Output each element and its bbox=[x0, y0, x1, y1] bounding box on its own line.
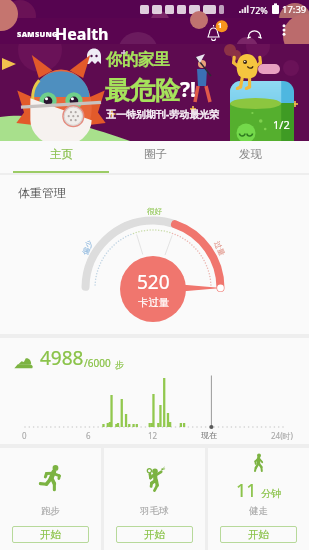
button[interactable]: More options bbox=[276, 22, 292, 38]
staticText: 1 bbox=[218, 21, 223, 31]
staticText: 开始 bbox=[144, 528, 165, 541]
staticText: 开始 bbox=[40, 528, 61, 541]
staticText: 卡过量 bbox=[138, 296, 170, 309]
staticText: 6 bbox=[86, 430, 91, 441]
staticText: 健走 bbox=[249, 505, 268, 517]
staticText: 圈子 bbox=[144, 147, 167, 161]
staticText: 发现 bbox=[239, 147, 262, 161]
button[interactable]: 11 bbox=[208, 448, 309, 550]
button[interactable]: 圈子 bbox=[107, 141, 203, 173]
button[interactable]: 开始 bbox=[116, 526, 193, 543]
staticText: 跑步 bbox=[41, 505, 60, 517]
staticText: 0 bbox=[22, 430, 27, 441]
staticText: 步 bbox=[115, 359, 124, 370]
button[interactable]: 羽毛球 bbox=[104, 448, 205, 550]
staticText: ?! bbox=[180, 75, 196, 104]
staticText: Health bbox=[55, 23, 109, 45]
staticText: 分钟 bbox=[261, 487, 281, 500]
staticText: 最危险 bbox=[105, 75, 180, 106]
button[interactable]: 发现 bbox=[202, 141, 298, 173]
staticText: 很好 bbox=[147, 207, 162, 216]
staticText: 偏少 bbox=[80, 239, 94, 256]
button[interactable]: Profile bbox=[245, 23, 263, 41]
staticText: 520 bbox=[137, 269, 170, 295]
staticText: 1/2 bbox=[273, 117, 290, 132]
staticText: 羽毛球 bbox=[140, 505, 169, 517]
staticText: 你的家里 bbox=[106, 50, 170, 70]
button[interactable]: 开始 bbox=[12, 526, 89, 543]
staticText: 17:39 bbox=[282, 3, 307, 16]
staticText: 五一特别期刊-劳动最光荣 bbox=[106, 107, 220, 121]
staticText: 4988 bbox=[40, 345, 84, 371]
staticText: 11 bbox=[236, 478, 257, 503]
button[interactable]: 体重管理 bbox=[0, 175, 309, 334]
staticText: 过量 bbox=[212, 240, 226, 257]
staticText: 体重管理 bbox=[18, 185, 66, 200]
staticText: /6000 bbox=[84, 356, 111, 370]
staticText: 24(时) bbox=[271, 430, 293, 441]
button[interactable]: 4988 bbox=[0, 338, 309, 444]
button[interactable]: 开始 bbox=[220, 526, 297, 543]
staticText: SAMSUNG bbox=[17, 29, 58, 39]
staticText: 12 bbox=[148, 430, 158, 441]
staticText: 主页 bbox=[50, 147, 73, 161]
staticText: 现在 bbox=[201, 430, 217, 440]
button[interactable]: 跑步 bbox=[0, 448, 101, 550]
button[interactable]: 你的家里 bbox=[0, 44, 309, 141]
button[interactable]: Notifications bbox=[203, 20, 227, 44]
staticText: 72% bbox=[250, 4, 268, 16]
button[interactable]: 主页 bbox=[13, 141, 109, 173]
staticText: 开始 bbox=[248, 528, 269, 541]
